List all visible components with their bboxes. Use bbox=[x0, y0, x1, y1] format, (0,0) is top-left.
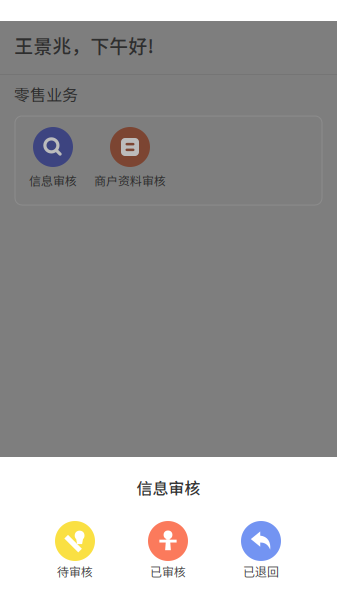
button[interactable]: 已审核 bbox=[122, 521, 214, 580]
button[interactable]: 待审核 bbox=[29, 521, 121, 580]
staticText: 已审核 bbox=[150, 563, 186, 580]
staticText: 商户资料审核 bbox=[94, 172, 166, 189]
staticText: 信息审核 bbox=[29, 172, 77, 189]
staticText: 王景兆，下午好! bbox=[14, 31, 153, 58]
button[interactable]: 商户资料审核 bbox=[91, 127, 169, 189]
button[interactable]: 已退回 bbox=[215, 521, 307, 580]
staticText: 待审核 bbox=[57, 563, 93, 580]
button[interactable]: 信息审核 bbox=[14, 127, 92, 189]
staticText: 信息审核 bbox=[136, 476, 200, 499]
staticText: 已退回 bbox=[243, 563, 279, 580]
staticText: 零售业务 bbox=[14, 82, 78, 106]
